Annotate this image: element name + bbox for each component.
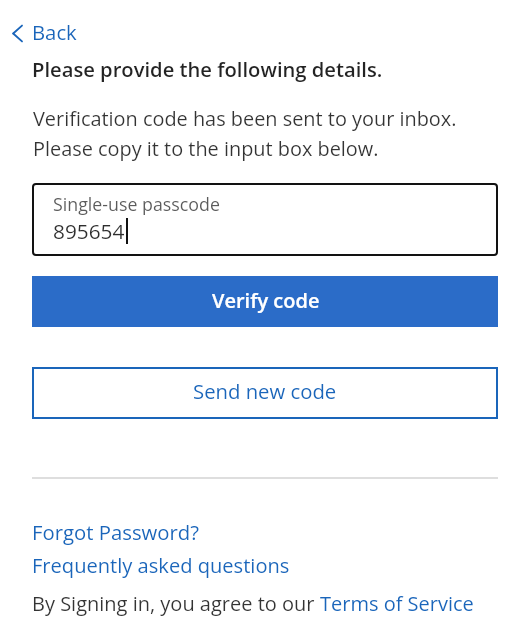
- button[interactable]: Back: [6, 18, 88, 46]
- staticText: Verification code has been sent to your …: [33, 105, 457, 162]
- staticText: 895654: [53, 217, 125, 245]
- button[interactable]: Forgot Password?: [32, 518, 199, 546]
- button[interactable]: Single-use passcode: [32, 183, 498, 256]
- staticText: Back: [32, 18, 77, 46]
- staticText: Send new code: [193, 377, 337, 405]
- other: Back: [6, 20, 30, 44]
- button[interactable]: Frequently asked questions: [32, 552, 290, 579]
- staticText: By Signing in, you agree to our: [32, 590, 320, 617]
- staticText: Please provide the following details.: [32, 55, 383, 83]
- button[interactable]: Verify code: [32, 276, 498, 327]
- button[interactable]: Send new code: [32, 367, 498, 419]
- staticText: Single-use passcode: [53, 192, 220, 216]
- button[interactable]: Terms of Service: [320, 590, 474, 617]
- staticText: Verify code: [212, 287, 320, 314]
